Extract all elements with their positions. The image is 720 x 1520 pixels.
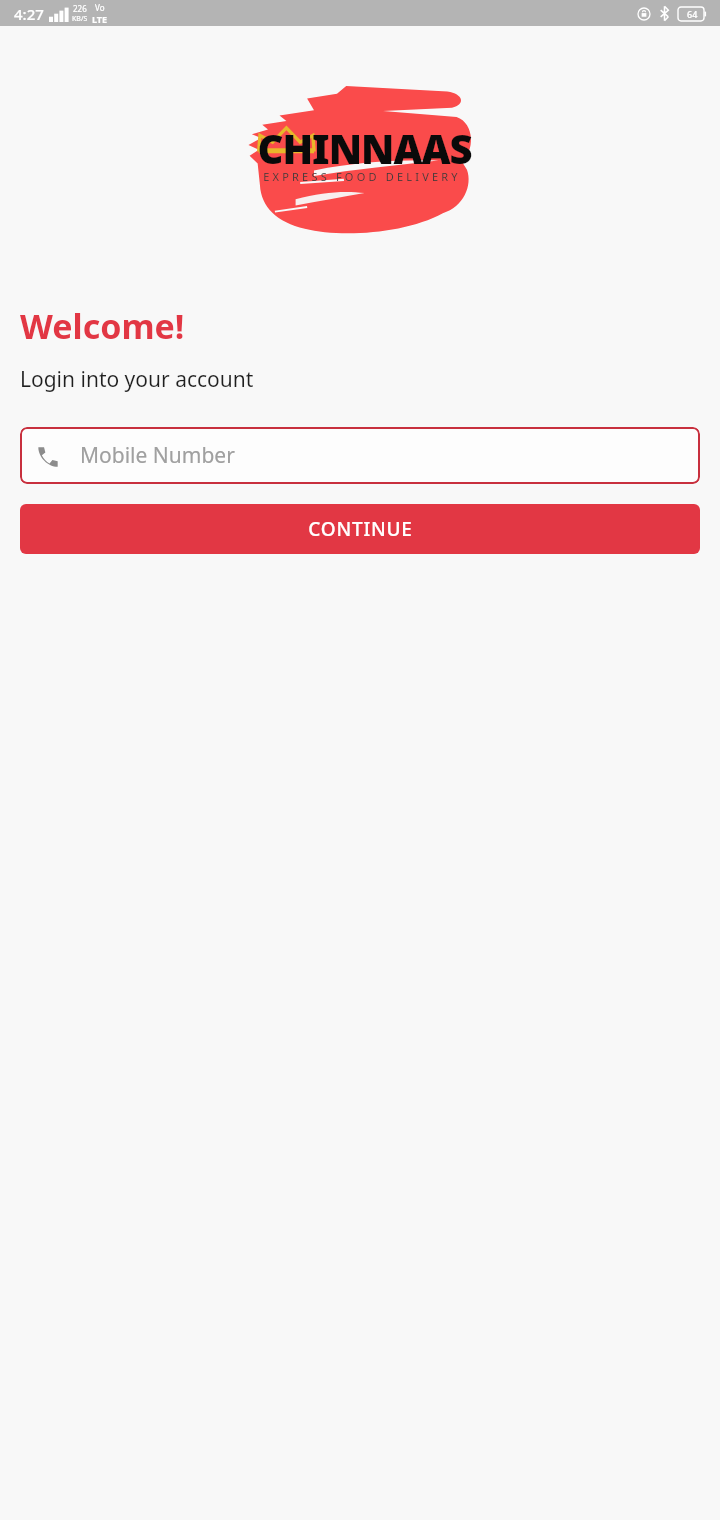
staticText: 226 (73, 3, 87, 14)
staticText: 4:27 (14, 4, 44, 24)
staticText: CHINNAAS (257, 121, 472, 175)
staticText: Welcome! (20, 303, 185, 349)
staticText: CONTINUE (308, 516, 413, 542)
staticText: 64 (687, 8, 698, 20)
button[interactable]: CONTINUE (20, 504, 700, 554)
staticText: Vo (95, 2, 105, 13)
staticText: Mobile Number (80, 441, 235, 470)
staticText: EXPRESS FOOD DELIVERY (263, 169, 461, 184)
button[interactable]: Mobile Number (20, 427, 700, 484)
staticText: KB/S (72, 14, 88, 24)
staticText: LTE (92, 13, 108, 25)
staticText: Login into your account (20, 365, 254, 394)
